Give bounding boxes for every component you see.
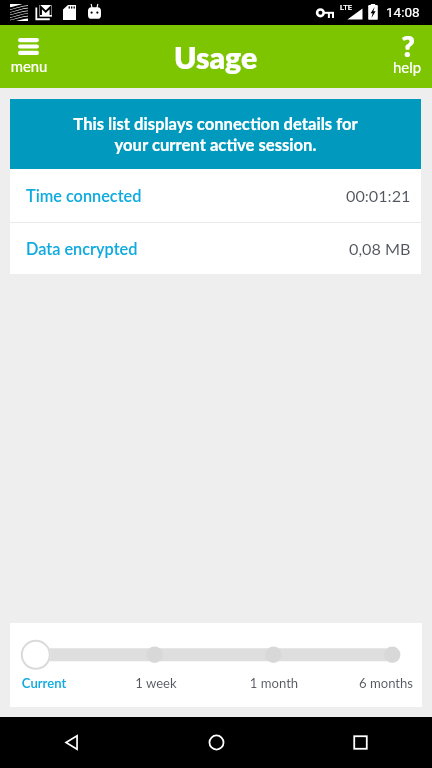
staticText: 1 week [106,675,206,691]
staticText: 14:08 [386,4,420,20]
button[interactable]: Data encrypted [10,223,421,274]
staticText: 1 month [224,675,324,691]
staticText: 6 months [336,675,432,691]
staticText: help [383,58,431,76]
staticText: This list displays connection details fo… [10,114,421,155]
button[interactable]: Help [384,25,432,88]
staticText: Usage [174,39,258,75]
staticText: ? [384,28,432,63]
button[interactable]: Time connected [10,169,421,222]
button[interactable]: Back [0,717,144,768]
staticText: Data encrypted [26,239,138,259]
staticText: 00:01:21 [346,186,411,205]
staticText: LTE [340,3,353,12]
button[interactable]: Menu [0,25,58,88]
staticText: 0,08 MB [349,239,411,258]
staticText: menu [0,57,58,75]
button[interactable]: Recent apps [288,717,432,768]
staticText: Current [0,675,94,691]
button[interactable]: Home [144,717,288,768]
staticText: Time connected [26,186,142,206]
